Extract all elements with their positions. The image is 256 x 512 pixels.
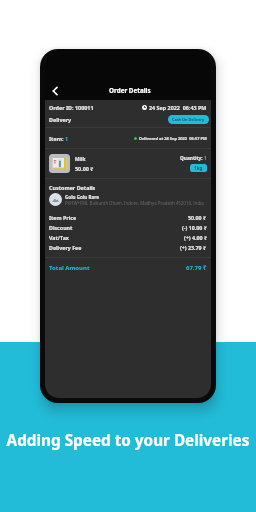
staticText: Delivery Fee xyxy=(49,244,82,251)
staticText: 1 xyxy=(65,135,69,142)
staticText: (-) 10.00 ₹ xyxy=(182,224,207,231)
staticText: PXHW+F88, Baikunth Dham, Indore, Madhya … xyxy=(65,200,211,206)
button[interactable]: Back xyxy=(46,82,64,100)
button[interactable]: Cash On Delivery xyxy=(168,115,209,124)
staticText: (+) 4.00 ₹ xyxy=(184,234,207,241)
staticText: Order ID: 100011 xyxy=(49,104,94,111)
staticText: Order Details xyxy=(109,86,151,95)
staticText: Quantity: xyxy=(180,155,204,162)
staticText: 67.79 ₹ xyxy=(186,264,207,272)
staticText: 1kg xyxy=(194,165,203,171)
staticText: Delivery xyxy=(49,116,72,123)
staticText: Cash On Delivery xyxy=(172,117,205,122)
staticText: Milk xyxy=(75,156,86,163)
staticText: Delivered at 24 Sep 2022 06:57 PM xyxy=(139,136,207,141)
staticText: Total Amount xyxy=(49,264,90,272)
staticText: 50.00 ₹ xyxy=(188,214,207,221)
staticText: Item Price xyxy=(49,214,77,221)
staticText: (+) 23.79 ₹ xyxy=(180,244,207,251)
staticText: 24 Sep 2022 06:43 PM xyxy=(149,104,207,111)
staticText: Customer Details xyxy=(49,184,96,191)
staticText: Adding Speed to your Deliveries xyxy=(0,430,256,451)
staticText: 1 xyxy=(204,155,207,162)
staticText: Golu Golu Rare xyxy=(65,194,99,200)
staticText: 50.00 ₹ xyxy=(75,165,94,172)
staticText: Vat/Tax xyxy=(49,234,69,241)
staticText: Discount xyxy=(49,224,73,231)
staticText: Item: xyxy=(49,135,65,142)
